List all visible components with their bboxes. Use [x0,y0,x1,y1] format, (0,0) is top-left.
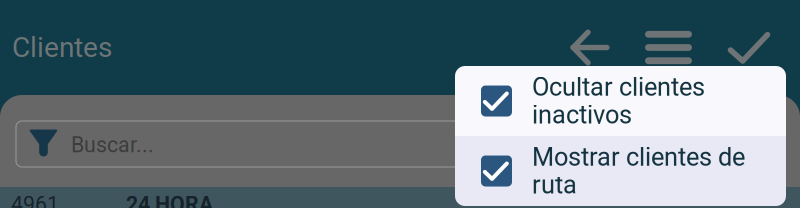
staticText: Clientes [12,31,112,64]
button[interactable]: Mostrar clientes de [455,136,786,206]
button[interactable]: Confirm [728,29,770,65]
staticText: 24 HORA [126,192,213,208]
button[interactable]: Back [571,29,609,65]
staticText: inactivos [532,100,632,130]
staticText: Mostrar clientes de [532,142,745,172]
staticText: Ocultar clientes [532,72,705,102]
button[interactable]: Menu [645,29,692,65]
staticText: 4961 [11,192,59,208]
staticText: Buscar... [71,132,154,157]
button[interactable]: Ocultar clientes [455,66,786,136]
staticText: ruta [532,170,577,200]
